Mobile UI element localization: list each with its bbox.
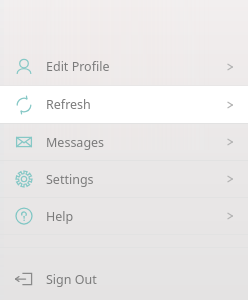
button[interactable]: Messages: [0, 124, 248, 160]
staticText: Help: [46, 208, 74, 225]
button[interactable]: Settings: [0, 161, 248, 197]
button[interactable]: Edit Profile: [0, 48, 248, 85]
button[interactable]: Help: [0, 198, 248, 234]
staticText: Messages: [46, 134, 105, 151]
button[interactable]: Refresh: [0, 86, 248, 123]
staticText: Refresh: [46, 96, 91, 113]
staticText: Settings: [46, 171, 94, 188]
staticText: Sign Out: [46, 271, 97, 288]
button[interactable]: Sign Out: [0, 260, 248, 298]
staticText: Edit Profile: [46, 58, 110, 75]
